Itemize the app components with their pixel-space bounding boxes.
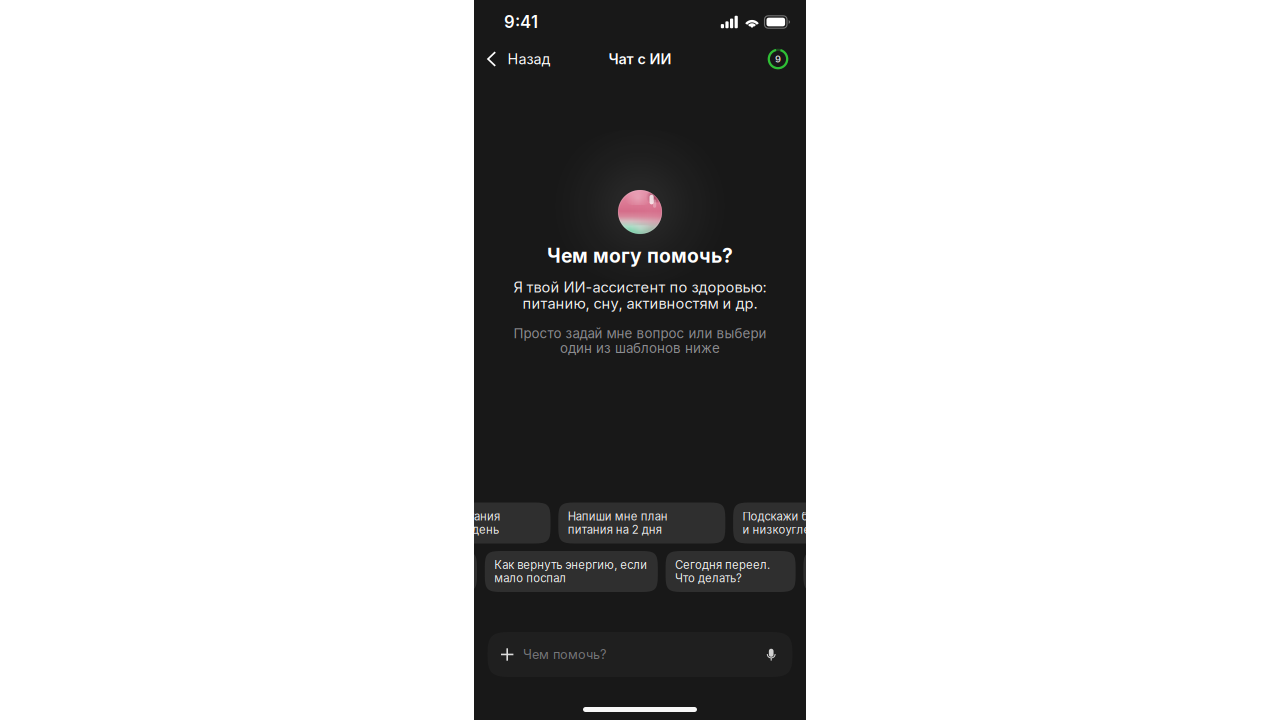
button[interactable]: Сегодня переел. [666,551,796,592]
button[interactable]: Хочу наладить сон. [803,551,943,592]
staticText: на сегодняшний день [378,523,499,536]
button[interactable]: Напиши мне план [558,502,725,543]
staticText: мало поспал [494,571,566,585]
staticText: Как вернуть энергию, если [494,558,647,572]
button[interactable]: Составь план питания [368,502,550,543]
button[interactable]: Назад [474,43,559,75]
button[interactable]: Как вернуть энергию, если [485,551,658,592]
staticText: Я твой ИИ-ассистент по здоровью: [513,278,766,296]
staticText: Назад [508,50,551,68]
button[interactable]: Подскажи блюда [733,502,896,543]
staticText: Что делать? [675,571,742,585]
staticText: 9 [775,53,781,65]
staticText: Сегодня переел. [675,558,770,572]
button[interactable]: Добавь йогурт [361,551,477,592]
staticText: Подскажи блюда [743,509,839,523]
staticText: питанию, сну, активностям и др. [522,295,757,312]
staticText: Чат с ИИ [608,50,671,68]
staticText: Составь план питания [378,509,500,523]
staticText: и низкоуглеводные [743,523,853,536]
button[interactable]: Чем помочь? [487,632,792,677]
staticText: Напиши мне план [568,509,668,523]
staticText: один из шаблонов ниже [560,340,720,356]
staticText: питания на 2 дня [568,523,662,536]
staticText: Чем помочь? [523,647,606,662]
button[interactable]: Осталось 9 запросов [768,43,806,75]
staticText: Чем могу помочь? [547,244,733,267]
staticText: Просто задай мне вопрос или выбери [513,325,766,341]
staticText: 9:41 [504,12,538,32]
